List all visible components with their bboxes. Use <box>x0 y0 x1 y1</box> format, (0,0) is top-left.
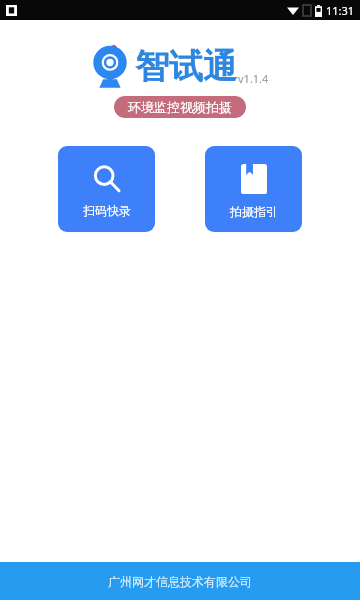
staticText: v1.1.4 <box>238 71 269 86</box>
staticText: 智试通 <box>135 45 237 88</box>
button[interactable]: 环境监控视频拍摄 <box>114 96 246 118</box>
staticText: 广州网才信息技术有限公司 <box>108 574 252 589</box>
button[interactable]: Scan code quick record <box>58 146 155 232</box>
staticText: 11:31 <box>326 3 355 18</box>
staticText: 环境监控视频拍摄 <box>128 99 232 115</box>
staticText: 拍摄指引 <box>230 204 278 219</box>
staticText: 扫码快录 <box>83 203 131 218</box>
button[interactable]: Shooting guide <box>205 146 302 232</box>
